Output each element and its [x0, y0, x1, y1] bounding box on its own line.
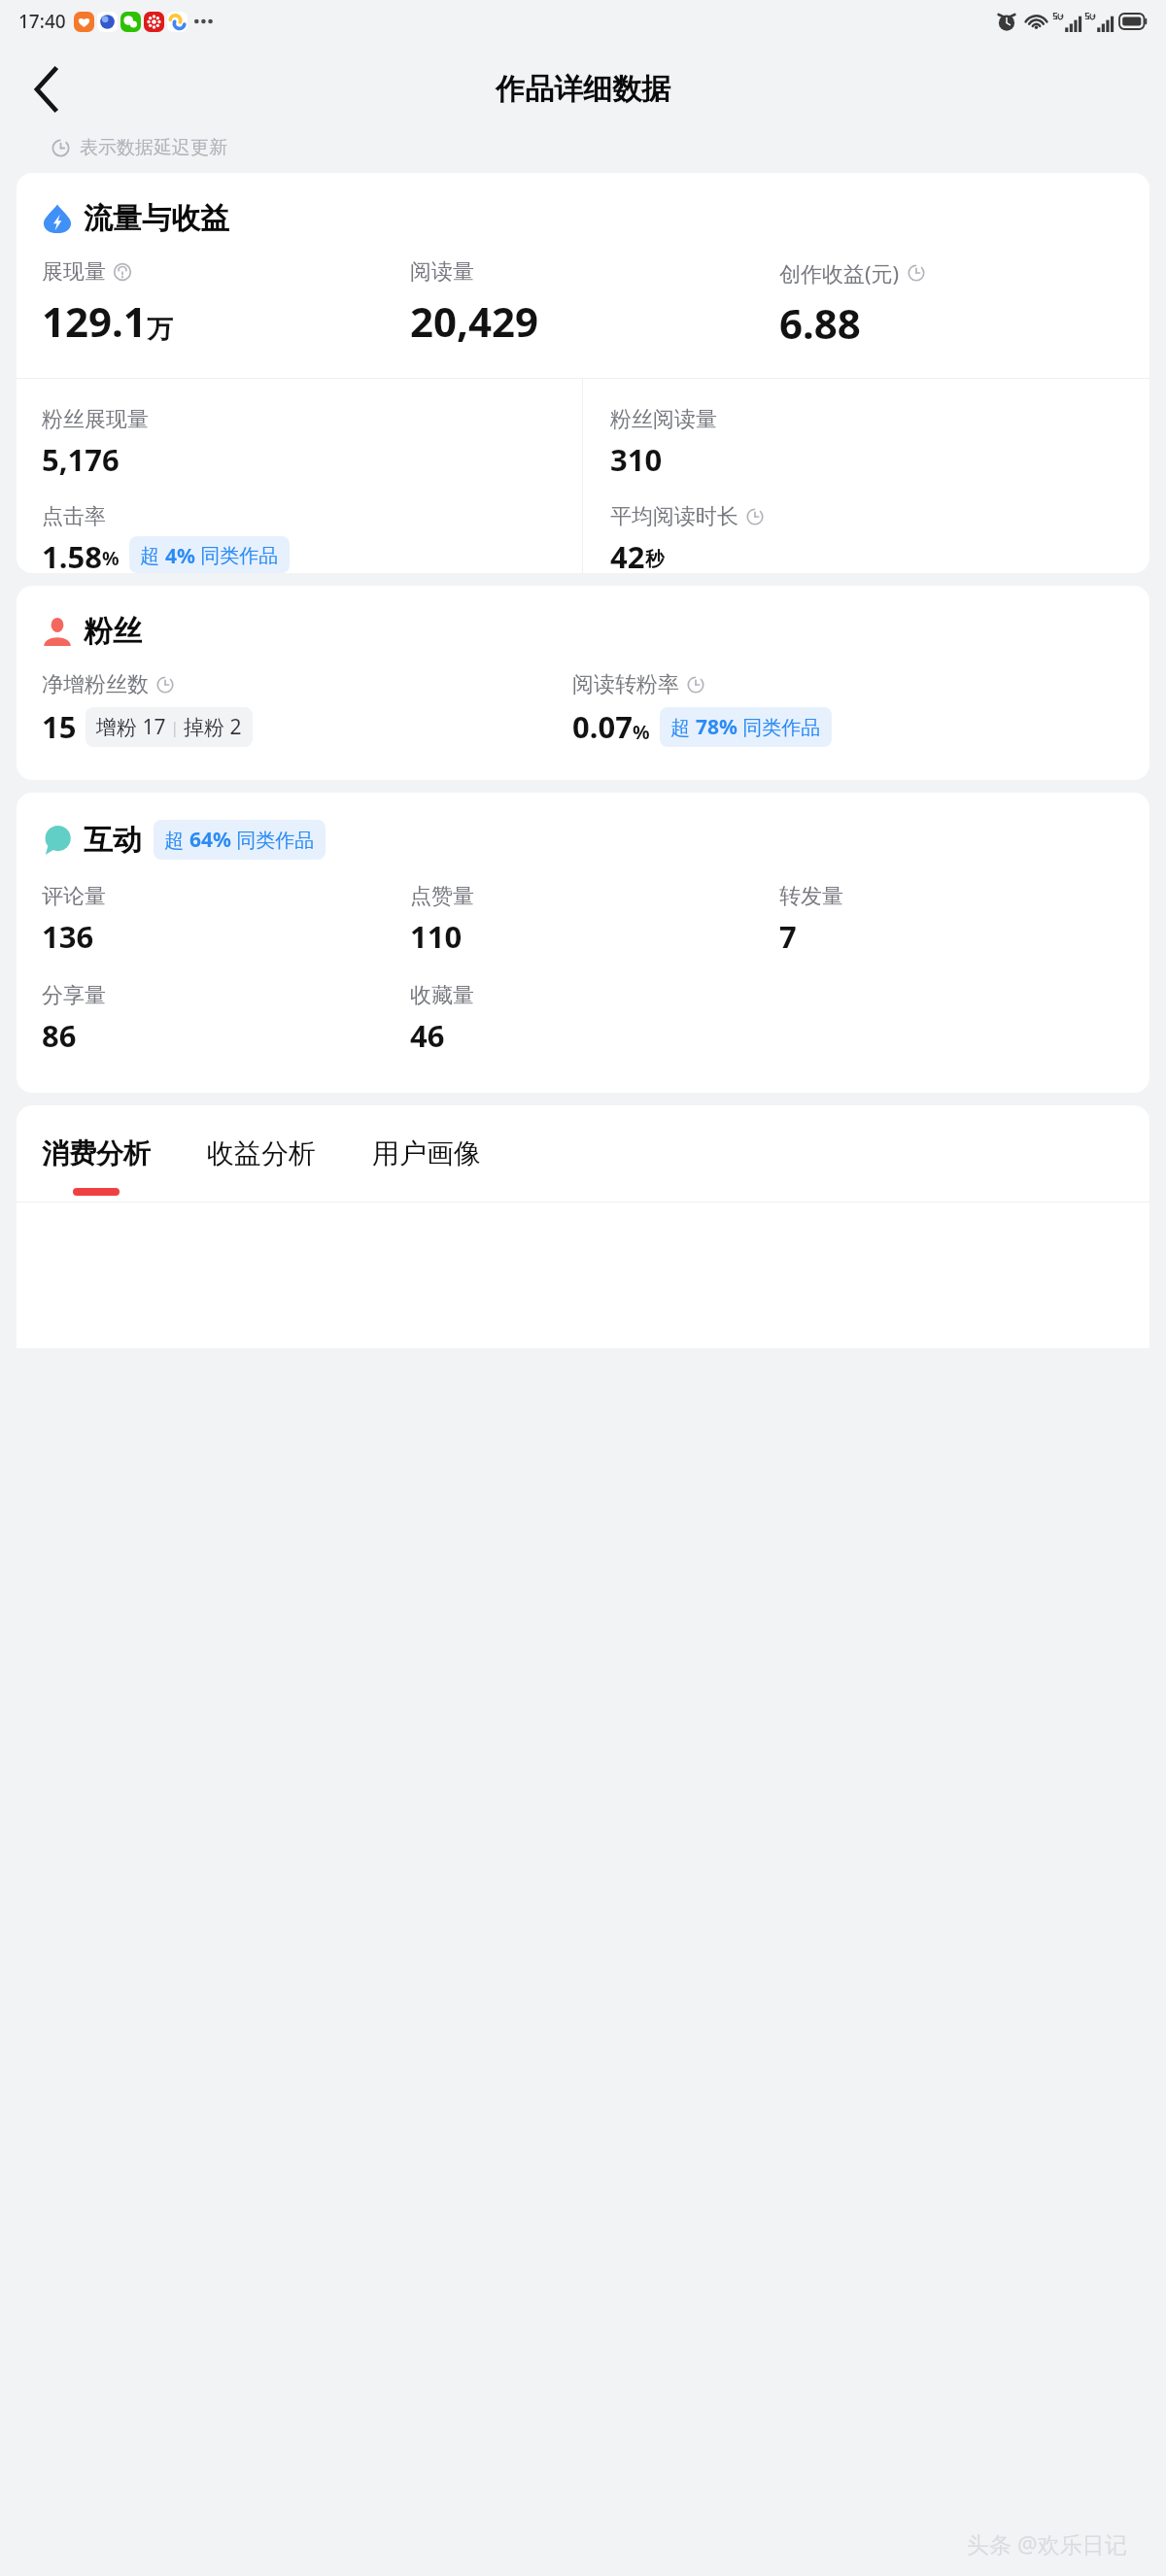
staticText: 42 [610, 536, 645, 573]
staticText: 129.1 [42, 293, 147, 349]
staticText: | [166, 717, 184, 738]
button[interactable]: 消费分析 [42, 1136, 151, 1202]
staticText: 净增粉丝数 [42, 671, 149, 698]
staticText: 展现量 [42, 258, 106, 286]
staticText: 86 [42, 1015, 77, 1056]
button[interactable]: 用户画像 [372, 1136, 481, 1202]
staticText: 表示数据延迟更新 [80, 136, 227, 159]
staticText: 110 [410, 916, 463, 957]
staticText: 20,429 [410, 293, 539, 349]
staticText: 同类作品 [737, 714, 821, 740]
staticText: 用户画像 [372, 1136, 481, 1170]
staticText: 头条 @欢乐日记 [967, 2528, 1127, 2559]
staticText: 1.58 [42, 536, 102, 573]
staticText: 粉丝展现量 [42, 406, 149, 433]
staticText: 0.07 [572, 706, 633, 747]
staticText: 超 [670, 714, 696, 740]
staticText: 阅读转粉率 [572, 671, 679, 698]
staticText: 流量与收益 [84, 200, 229, 237]
staticText: 评论量 [42, 883, 106, 910]
staticText: 点赞量 [410, 883, 474, 910]
staticText: 6.88 [779, 295, 861, 351]
staticText: 超 [164, 827, 189, 853]
staticText: 46 [410, 1015, 445, 1056]
staticText: 64% [189, 826, 231, 854]
staticText: 粉丝 [84, 613, 142, 650]
staticText: 秒 [645, 547, 665, 571]
staticText: 作品详细数据 [496, 71, 670, 108]
staticText: 点击率 [42, 503, 106, 530]
button[interactable]: 收益分析 [207, 1136, 316, 1202]
staticText: 收益分析 [207, 1136, 316, 1170]
staticText: 136 [42, 916, 94, 957]
staticText: 平均阅读时长 [610, 503, 738, 530]
staticText: 粉丝阅读量 [610, 406, 717, 433]
staticText: 互动 [84, 822, 142, 859]
staticText: 7 [779, 916, 797, 957]
staticText: 收藏量 [410, 982, 474, 1009]
staticText: % [102, 545, 120, 571]
staticText: 分享量 [42, 982, 106, 1009]
staticText: 同类作品 [231, 827, 315, 853]
staticText: 阅读量 [410, 258, 474, 286]
staticText: 5,176 [42, 439, 120, 480]
staticText: 17:40 [18, 9, 66, 34]
staticText: 4% [165, 542, 195, 567]
staticText: 78% [696, 713, 737, 741]
staticText: 增粉 17 [96, 713, 166, 741]
staticText: 15 [42, 706, 77, 747]
staticText: 超 [140, 542, 165, 567]
staticText: 消费分析 [42, 1136, 151, 1170]
staticText: 310 [610, 439, 663, 480]
staticText: 万 [147, 314, 173, 346]
button[interactable]: Back [16, 59, 76, 119]
staticText: 创作收益(元) [779, 258, 900, 288]
staticText: 同类作品 [195, 542, 279, 567]
staticText: % [633, 719, 650, 745]
staticText: 转发量 [779, 883, 843, 910]
staticText: 掉粉 2 [184, 713, 242, 741]
